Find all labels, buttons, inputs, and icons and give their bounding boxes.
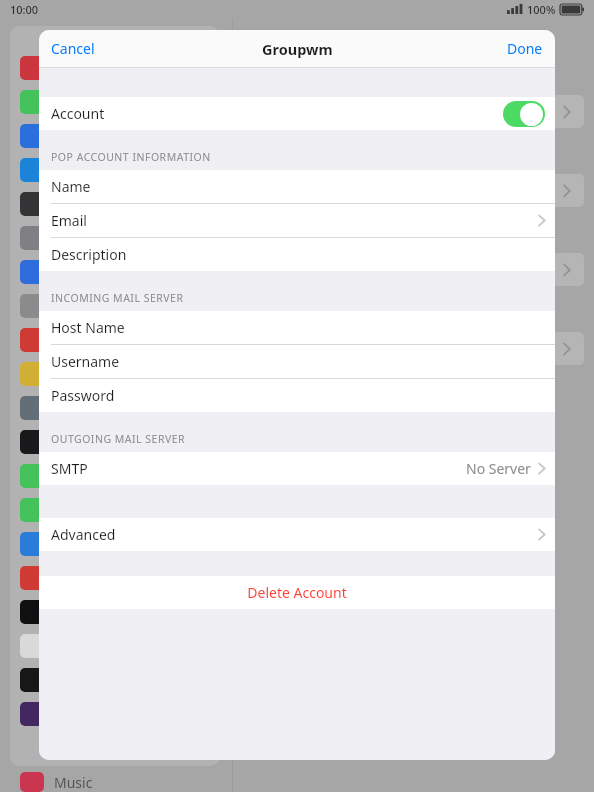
staticText: Settings: [88, 26, 158, 49]
button[interactable]: Password: [39, 379, 555, 412]
staticText: POP ACCOUNT INFORMATION: [51, 150, 211, 164]
button[interactable]: Account enabled: [503, 101, 545, 127]
staticText: Password: [51, 386, 115, 405]
staticText: INCOMING MAIL SERVER: [51, 291, 184, 305]
staticText: Host Name: [51, 318, 125, 337]
staticText: Mail: [258, 25, 286, 44]
staticText: Delete Account: [247, 583, 347, 602]
staticText: Account: [51, 104, 105, 123]
staticText: SMTP: [51, 459, 88, 478]
staticText: Accounts: [392, 24, 461, 44]
staticText: No Server: [466, 459, 531, 478]
button[interactable]: Account: [39, 97, 555, 130]
button[interactable]: Description: [39, 238, 555, 271]
button[interactable]: Delete Account: [39, 576, 555, 609]
staticText: Music: [54, 773, 93, 792]
button[interactable]: Username: [39, 345, 555, 378]
button[interactable]: Email: [39, 204, 555, 237]
button[interactable]: Name: [39, 170, 555, 203]
staticText: OUTGOING MAIL SERVER: [51, 432, 186, 446]
button[interactable]: Host Name: [39, 311, 555, 344]
staticText: Cancel: [51, 39, 95, 58]
staticText: Email: [51, 211, 87, 230]
staticText: Advanced: [51, 525, 116, 544]
button[interactable]: Advanced: [39, 518, 555, 551]
staticText: Groupwm: [262, 39, 333, 59]
staticText: 10:00: [10, 2, 39, 17]
staticText: Name: [51, 177, 91, 196]
staticText: Username: [51, 352, 120, 371]
button[interactable]: Done: [495, 31, 555, 66]
button[interactable]: Cancel: [39, 31, 107, 66]
staticText: Description: [51, 245, 127, 264]
staticText: 100%: [527, 2, 556, 17]
staticText: Done: [507, 39, 543, 58]
button[interactable]: SMTP: [39, 452, 555, 485]
